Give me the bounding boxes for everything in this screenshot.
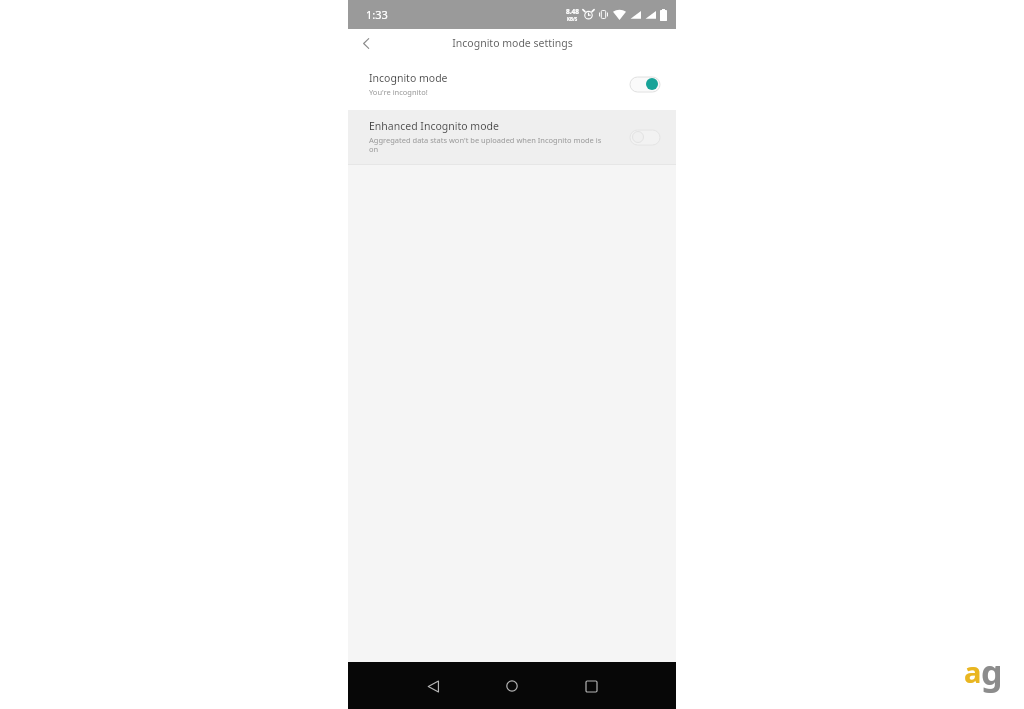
staticText: a xyxy=(964,652,982,691)
staticText: KB/S xyxy=(567,16,578,22)
button[interactable]: Back xyxy=(352,29,380,57)
staticText: Aggregated data stats won't be uploaded … xyxy=(369,135,602,155)
staticText: Enhanced Incognito mode xyxy=(369,119,499,133)
button[interactable]: Toggle on xyxy=(630,75,660,93)
button[interactable]: Enhanced Incognito mode xyxy=(348,110,676,164)
staticText: g xyxy=(981,649,1003,695)
button[interactable]: Back xyxy=(413,666,453,706)
button[interactable]: Home xyxy=(492,666,532,706)
staticText: Incognito mode settings xyxy=(452,36,573,50)
staticText: Incognito mode xyxy=(369,71,448,85)
staticText: You're incognito! xyxy=(369,87,428,97)
button[interactable]: Recent apps xyxy=(571,666,611,706)
staticText: 8.48 xyxy=(566,7,579,16)
button[interactable]: Incognito mode xyxy=(348,57,676,110)
staticText: 1:33 xyxy=(366,7,388,22)
button[interactable]: Toggle off xyxy=(630,128,660,146)
